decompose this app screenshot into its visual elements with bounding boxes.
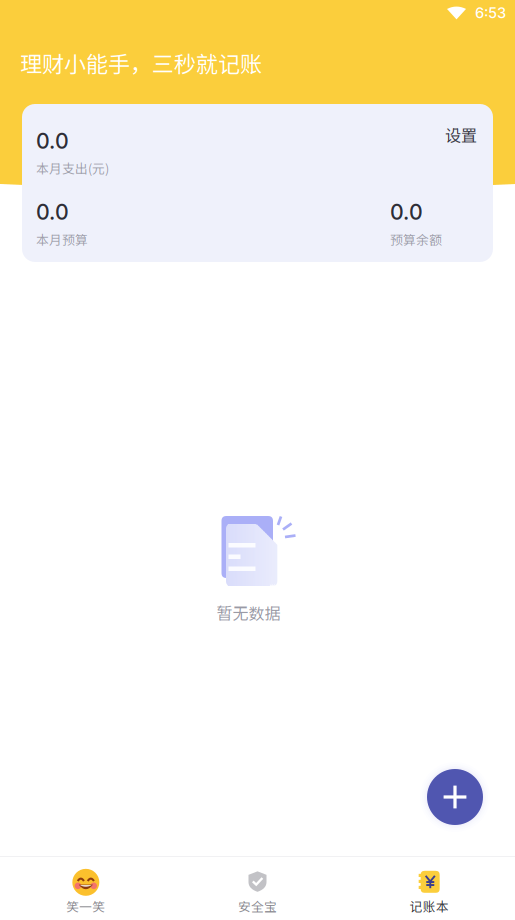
staticText: 本月预算 [36, 230, 88, 248]
staticText: 6:53 [475, 4, 506, 22]
staticText: 理财小能手，三秒就记账 [20, 47, 262, 79]
staticText: 0.0 [36, 128, 69, 154]
staticText: 本月支出(元) [36, 159, 109, 177]
staticText: 安全宝 [238, 897, 277, 915]
button[interactable]: 安全宝 [172, 856, 343, 920]
staticText: 设置 [445, 123, 477, 146]
staticText: 0.0 [36, 199, 69, 225]
staticText: 预算余额 [390, 230, 442, 248]
staticText: 记账本 [410, 897, 449, 915]
staticText: 笑一笑 [66, 897, 105, 915]
button[interactable]: Add record [427, 769, 483, 825]
button[interactable]: 记账本 [343, 856, 515, 920]
staticText: 暂无数据 [216, 601, 280, 624]
button[interactable]: 笑一笑 [0, 856, 172, 920]
staticText: 0.0 [390, 199, 423, 225]
button[interactable]: 设置 [442, 120, 480, 149]
